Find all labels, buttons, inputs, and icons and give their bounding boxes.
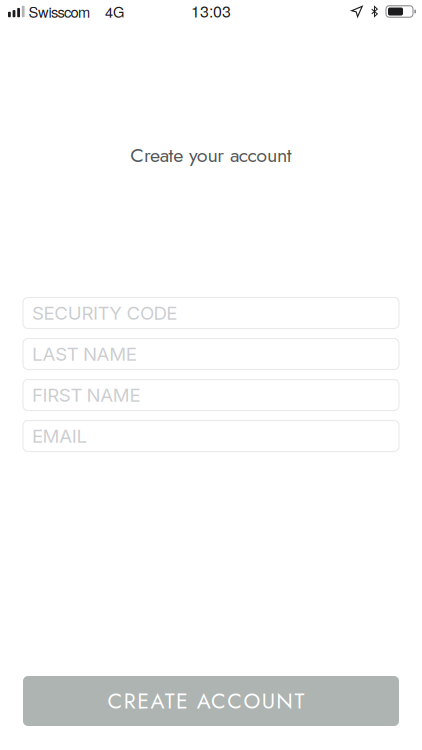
- button[interactable]: FIRST NAME: [23, 379, 399, 410]
- staticText: CREATE ACCOUNT: [108, 686, 304, 716]
- button[interactable]: LAST NAME: [23, 338, 399, 369]
- button[interactable]: CREATE ACCOUNT: [23, 676, 399, 726]
- staticText: EMAIL: [32, 425, 87, 447]
- button[interactable]: SECURITY CODE: [23, 297, 399, 328]
- staticText: FIRST NAME: [32, 384, 140, 406]
- staticText: LAST NAME: [32, 343, 137, 365]
- staticText: 4G: [105, 1, 124, 22]
- staticText: Swisscom: [29, 1, 90, 22]
- button[interactable]: EMAIL: [23, 420, 399, 451]
- staticText: SECURITY CODE: [32, 302, 177, 324]
- staticText: 13:03: [191, 0, 231, 22]
- staticText: Create your account: [130, 141, 292, 169]
